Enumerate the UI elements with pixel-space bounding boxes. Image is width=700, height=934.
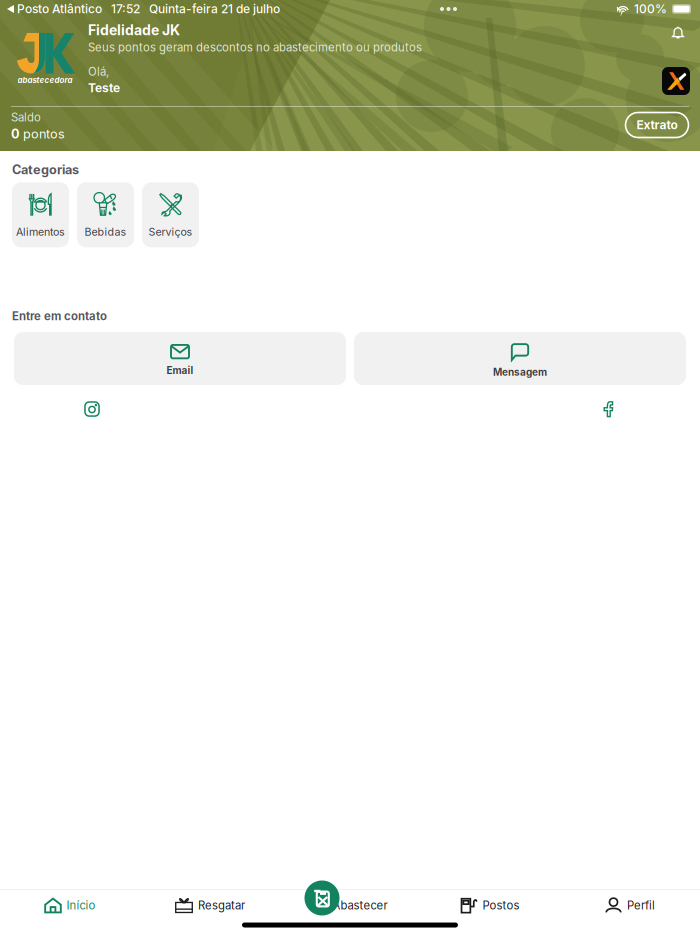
button[interactable]: Perfil xyxy=(560,882,700,928)
staticText: Teste xyxy=(88,81,120,95)
button[interactable]: Início xyxy=(0,882,140,928)
staticText: Olá, xyxy=(88,65,109,79)
staticText: Resgatar xyxy=(198,899,245,912)
staticText: 0 xyxy=(11,126,20,141)
button[interactable]: Parceiro xyxy=(662,67,690,95)
staticText: Mensagem xyxy=(493,366,547,378)
staticText: Alimentos xyxy=(16,225,65,238)
staticText: Bebidas xyxy=(84,225,126,238)
staticText: Abastecer xyxy=(332,899,387,912)
staticText: Quinta-feira 21 de julho xyxy=(149,2,280,16)
staticText: Entre em contato xyxy=(12,309,107,323)
staticText: Início xyxy=(66,899,95,912)
button[interactable]: Abastecer xyxy=(304,880,339,915)
staticText: Postos xyxy=(482,899,519,912)
staticText: Saldo xyxy=(11,110,41,124)
button[interactable]: Email xyxy=(14,332,346,385)
button[interactable]: Notificações xyxy=(665,22,691,44)
staticText: pontos xyxy=(23,126,65,141)
button[interactable]: Postos xyxy=(420,882,560,928)
button[interactable]: Mensagem xyxy=(354,332,686,385)
button[interactable]: Alimentos xyxy=(12,182,69,247)
staticText: Extrato xyxy=(636,118,677,132)
button[interactable]: Facebook xyxy=(587,395,629,423)
staticText: Perfil xyxy=(627,899,655,912)
button[interactable]: Instagram xyxy=(71,395,113,423)
staticText: Serviços xyxy=(148,225,192,238)
staticText: Email xyxy=(166,364,193,376)
button[interactable]: Resgatar xyxy=(140,882,280,928)
staticText: abastecedora xyxy=(17,75,72,85)
staticText: Posto Atlântico xyxy=(17,2,102,16)
button[interactable]: Bebidas xyxy=(77,182,134,247)
staticText: 100% xyxy=(634,2,667,16)
button[interactable]: Abastecer xyxy=(280,882,420,928)
staticText: Seus pontos geram descontos no abastecim… xyxy=(88,41,422,54)
staticText: 17:52 xyxy=(111,2,140,16)
button[interactable]: Extrato xyxy=(625,112,688,137)
staticText: Categorias xyxy=(12,162,79,177)
button[interactable]: Serviços xyxy=(142,182,199,247)
staticText: Fidelidade JK xyxy=(88,22,180,39)
